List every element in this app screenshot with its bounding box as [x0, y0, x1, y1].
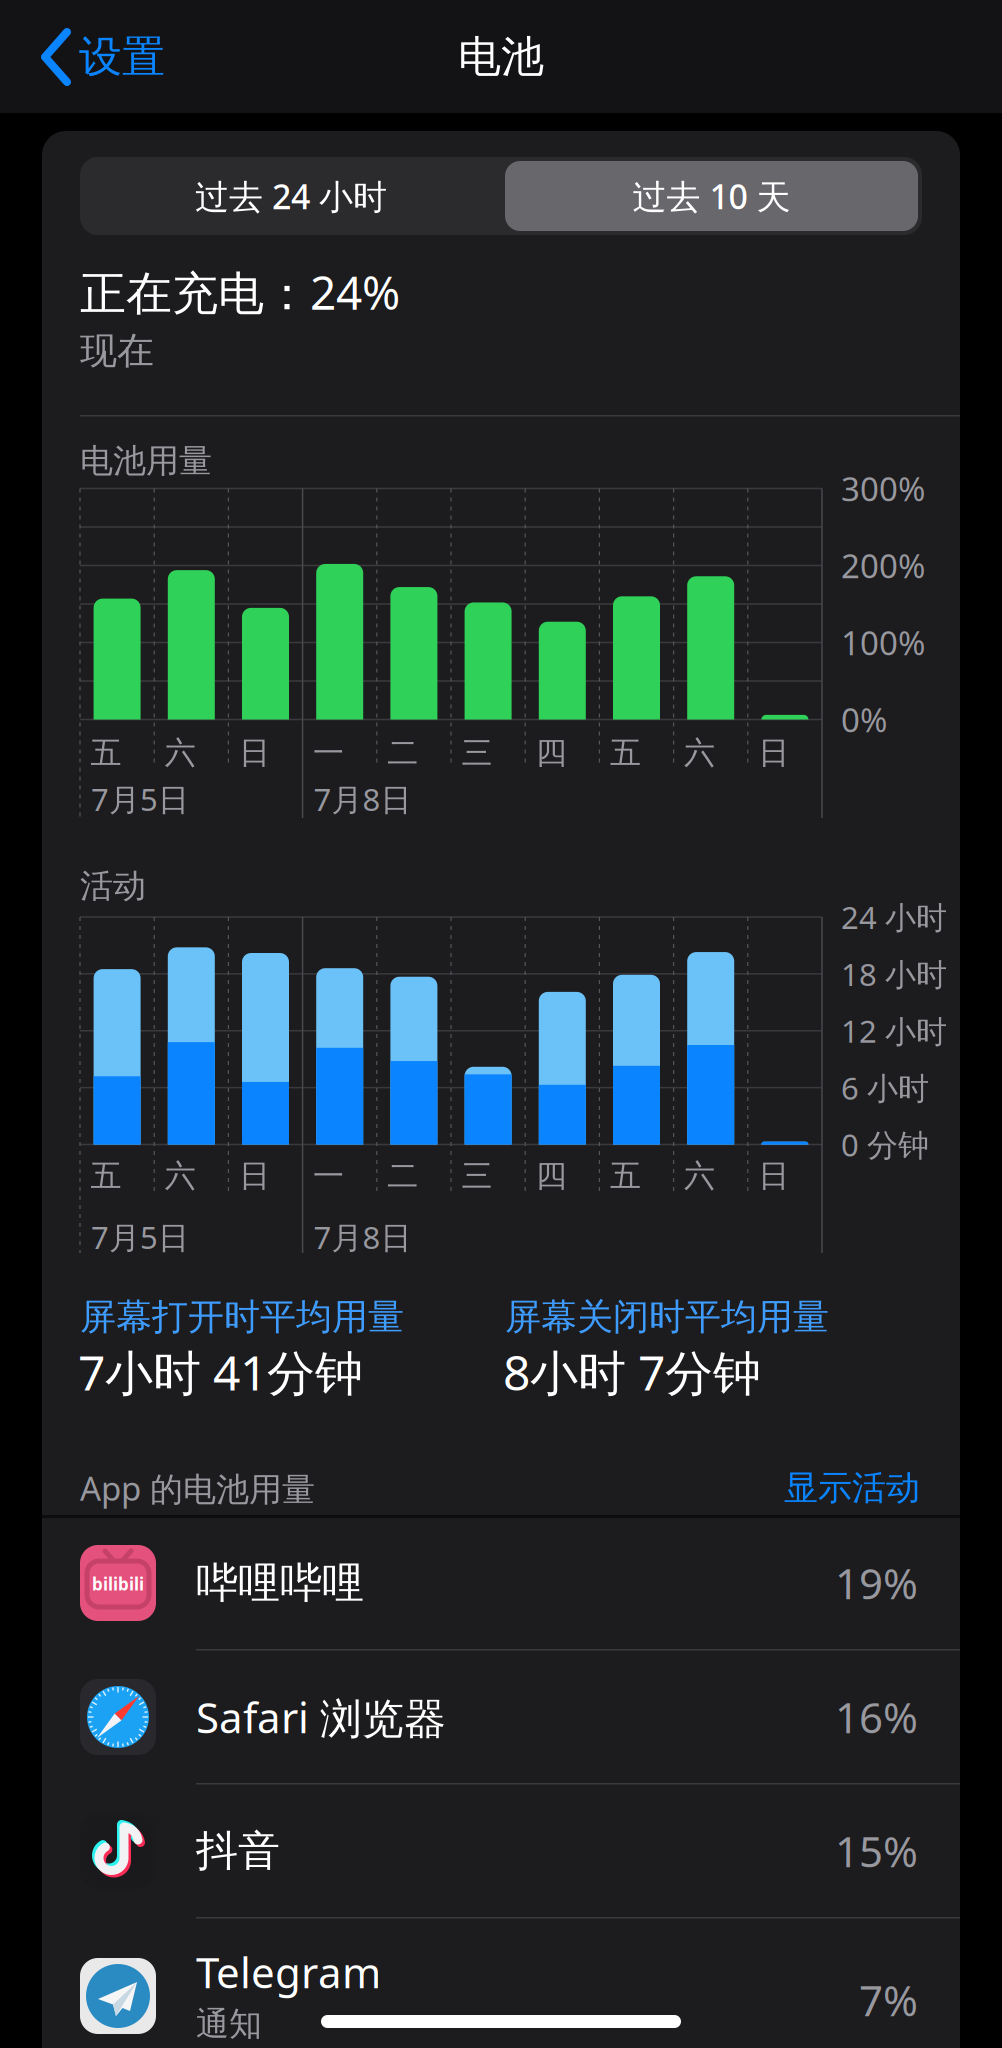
staticText: 五: [610, 733, 641, 773]
staticText: 六: [165, 733, 196, 773]
staticText: 8小时 7分钟: [503, 1339, 761, 1405]
staticText: 二: [387, 733, 418, 773]
staticText: 活动: [80, 865, 146, 907]
button[interactable]: Safari 浏览器: [42, 1650, 960, 1787]
button[interactable]: 抖音: [42, 1784, 960, 1921]
staticText: 屏幕打开时平均用量: [80, 1294, 404, 1340]
staticText: 过去 10 天: [632, 173, 790, 219]
staticText: 12 小时: [841, 1010, 947, 1052]
staticText: 200%: [841, 543, 925, 588]
staticText: 7月8日: [314, 1216, 412, 1258]
staticText: 日: [758, 1156, 789, 1196]
button[interactable]: 显示活动: [720, 1458, 920, 1518]
staticText: Safari 浏览器: [196, 1688, 446, 1746]
staticText: 7月5日: [91, 778, 189, 820]
staticText: Telegram: [196, 1943, 381, 2001]
button[interactable]: 设置: [29, 12, 219, 102]
staticText: 屏幕关闭时平均用量: [505, 1294, 829, 1340]
staticText: 三: [461, 733, 492, 773]
staticText: 四: [536, 1156, 567, 1196]
staticText: 三: [461, 1156, 492, 1196]
staticText: 六: [165, 1156, 196, 1196]
staticText: 15%: [835, 1822, 918, 1880]
staticText: 日: [758, 733, 789, 773]
staticText: 二: [387, 1156, 418, 1196]
button[interactable]: 过去 10 天: [505, 161, 918, 231]
staticText: 日: [239, 733, 270, 773]
staticText: 0 分钟: [841, 1123, 929, 1166]
staticText: 电池用量: [80, 440, 212, 482]
staticText: 0%: [841, 697, 887, 742]
staticText: 显示活动: [784, 1467, 920, 1509]
staticText: 7%: [859, 1971, 918, 2029]
staticText: 7月8日: [314, 778, 412, 820]
staticText: 过去 24 小时: [195, 173, 387, 219]
staticText: 五: [90, 1156, 121, 1196]
staticText: 16%: [835, 1688, 918, 1746]
button[interactable]: bilibili: [42, 1516, 960, 1653]
staticText: 六: [684, 733, 715, 773]
staticText: 300%: [841, 466, 925, 511]
staticText: bilibili: [92, 1572, 144, 1596]
staticText: 7月5日: [91, 1216, 189, 1258]
staticText: 五: [610, 1156, 641, 1196]
staticText: 日: [239, 1156, 270, 1196]
button[interactable]: Telegram: [42, 1918, 960, 2048]
staticText: 18 小时: [841, 953, 947, 995]
staticText: 五: [90, 733, 121, 773]
staticText: 7小时 41分钟: [78, 1339, 363, 1405]
staticText: 哔哩哔哩: [196, 1556, 364, 1609]
staticText: 通知: [196, 2003, 262, 2045]
staticText: 四: [536, 733, 567, 773]
staticText: 现在: [80, 328, 154, 374]
staticText: 6 小时: [841, 1066, 929, 1109]
staticText: 19%: [835, 1554, 918, 1612]
staticText: App 的电池用量: [80, 1465, 315, 1511]
button[interactable]: 过去 24 小时: [80, 157, 922, 235]
staticText: 24 小时: [841, 896, 947, 938]
staticText: 一: [313, 1156, 344, 1196]
staticText: 一: [313, 733, 344, 773]
staticText: 抖音: [196, 1824, 280, 1877]
staticText: 六: [684, 1156, 715, 1196]
staticText: 电池: [458, 30, 544, 84]
staticText: 100%: [841, 620, 925, 665]
staticText: 正在充电：24%: [80, 261, 400, 323]
staticText: 设置: [79, 30, 165, 84]
